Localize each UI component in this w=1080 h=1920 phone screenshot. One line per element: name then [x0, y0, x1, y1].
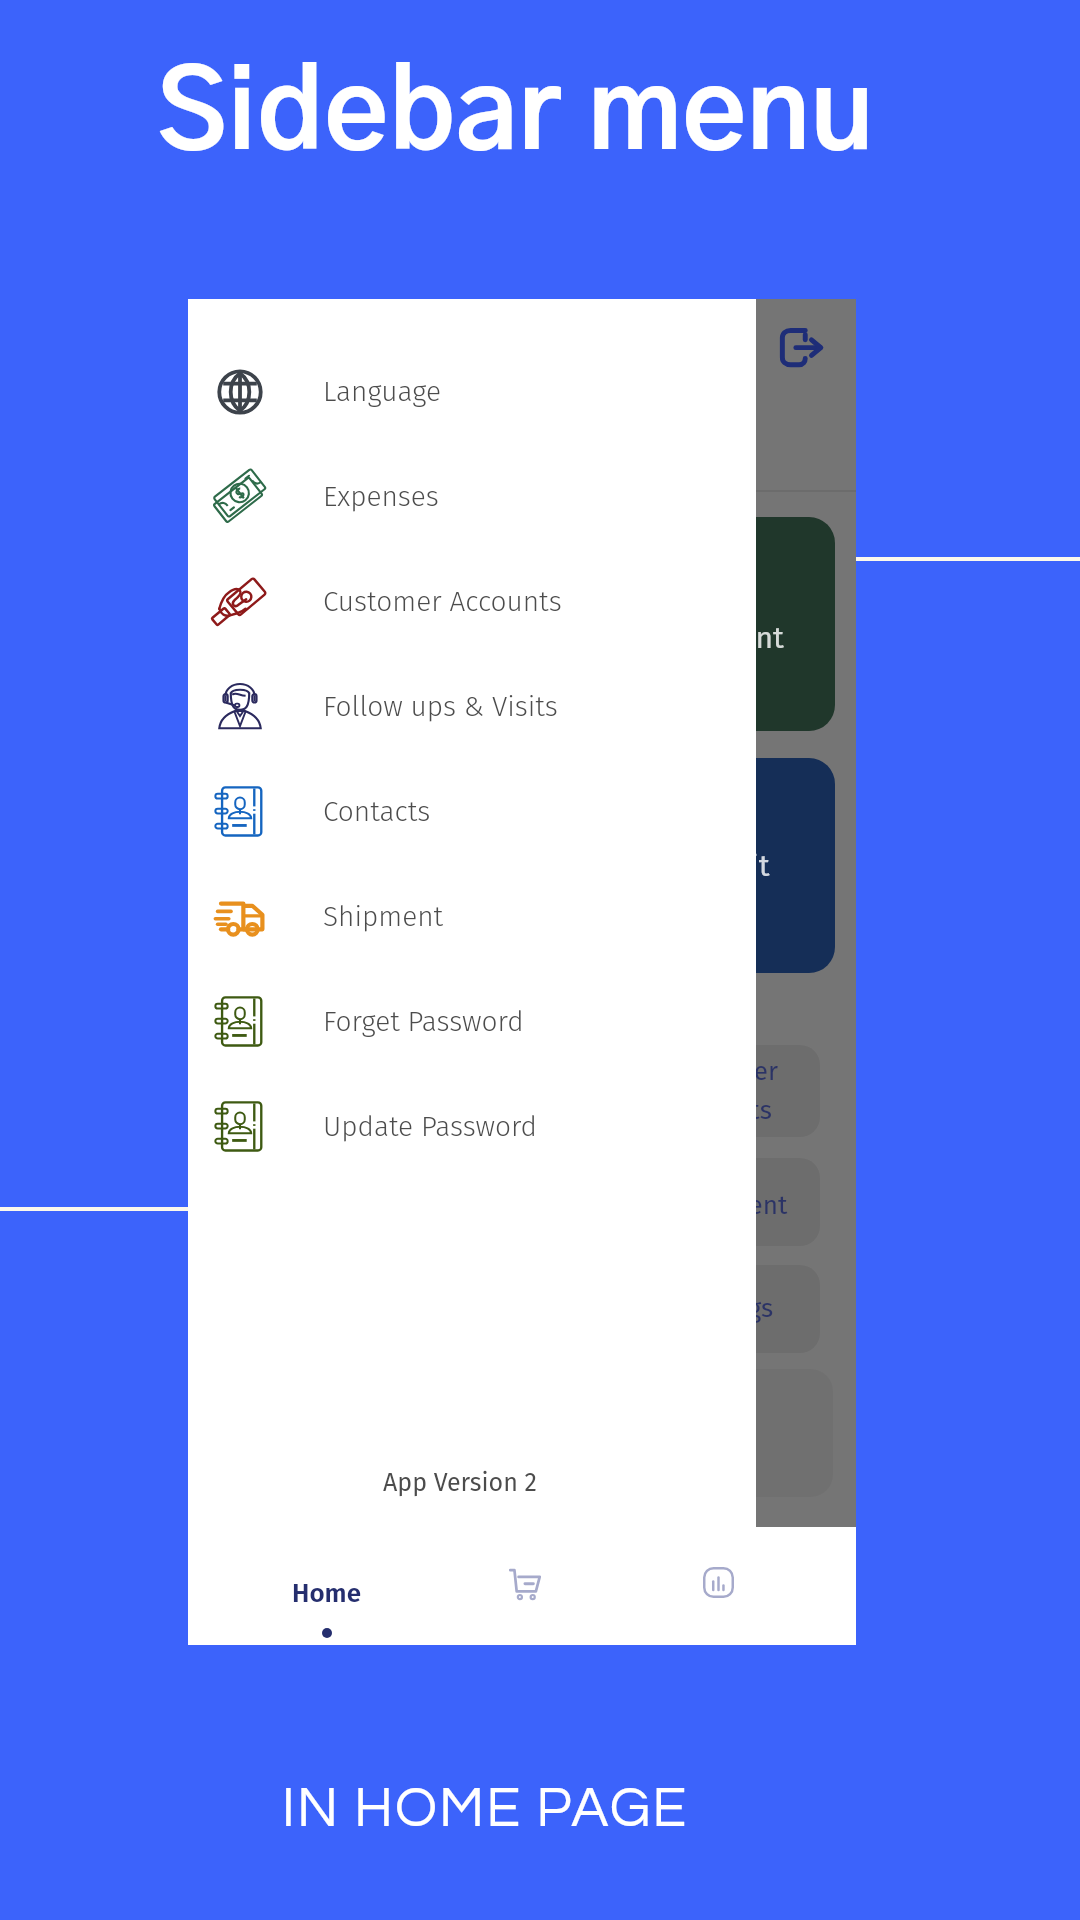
staticText: Language [323, 375, 441, 409]
button[interactable]: Cart [422, 1527, 621, 1645]
button[interactable]: Customer Accounts [188, 549, 756, 654]
button[interactable]: Forget Password [188, 969, 756, 1074]
staticText: Payment [686, 1190, 788, 1221]
staticText: Settings [678, 1293, 774, 1324]
button[interactable]: Reports [621, 1527, 820, 1645]
staticText: Customer Accounts [323, 585, 562, 619]
staticText: IN HOME PAGE [0, 1780, 1025, 1838]
button[interactable]: Logout [759, 304, 839, 384]
staticText: Sidebar menu [157, 62, 875, 171]
button[interactable]: Contacts [188, 759, 756, 864]
staticText: Home [292, 1578, 361, 1609]
staticText: Expenses [323, 480, 439, 514]
staticText: Shipment [323, 900, 444, 934]
button[interactable]: Home [224, 1527, 422, 1645]
button[interactable]: Expenses [188, 444, 756, 549]
button[interactable]: Shipment [188, 864, 756, 969]
staticText: App Version 2 [383, 1468, 537, 1498]
staticText: Add Visit [650, 848, 770, 884]
staticText: Contacts [323, 795, 431, 829]
staticText: Follow ups & Visits [323, 690, 558, 724]
button[interactable]: Language [188, 339, 756, 444]
staticText: Add Payment [606, 620, 784, 656]
staticText: Update Password [323, 1110, 537, 1144]
staticText: Forget Password [323, 1005, 524, 1039]
staticText: Customer Accounts [666, 1056, 779, 1126]
button[interactable]: Update Password [188, 1074, 756, 1179]
button[interactable]: Follow ups & Visits [188, 654, 756, 759]
